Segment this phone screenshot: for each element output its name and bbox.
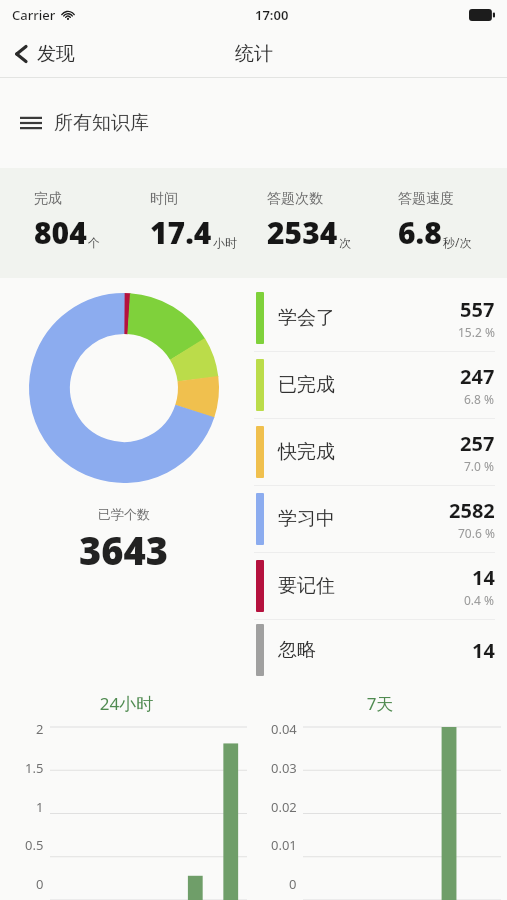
button[interactable]: 忽略 (248, 620, 495, 680)
staticText: 247 (460, 363, 495, 390)
staticText: 次 (339, 235, 351, 250)
staticText: 已完成 (278, 373, 335, 397)
staticText: 0 (289, 875, 297, 893)
staticText: 1 (36, 798, 44, 816)
button[interactable]: 学会了 (248, 285, 495, 351)
staticText: 学习中 (278, 507, 335, 531)
staticText: 17.4 (150, 212, 212, 253)
staticText: 秒/次 (443, 234, 472, 250)
staticText: 要记住 (278, 574, 335, 598)
staticText: 0.5 (25, 836, 44, 854)
staticText: 0.01 (271, 836, 297, 854)
button[interactable]: 已完成 (248, 352, 495, 418)
staticText: 804 (34, 212, 87, 253)
staticText: 70.6 % (458, 525, 495, 541)
staticText: 统计 (235, 42, 273, 66)
button[interactable]: 要记住 (248, 553, 495, 619)
staticText: 时间 (150, 190, 178, 208)
staticText: 6.8 (398, 212, 442, 253)
staticText: 答题速度 (398, 190, 454, 208)
staticText: 2 (36, 720, 44, 738)
staticText: 忽略 (278, 638, 316, 662)
staticText: 小时 (213, 235, 237, 250)
staticText: 17:00 (255, 6, 289, 24)
staticText: 15.2 % (458, 324, 495, 340)
button[interactable]: 快完成 (248, 419, 495, 485)
staticText: 14 (472, 564, 495, 591)
staticText: 2582 (449, 497, 495, 524)
button[interactable]: Menu (0, 101, 169, 145)
staticText: 0 (36, 875, 44, 893)
button[interactable]: 发现 (0, 36, 87, 72)
staticText: 7天 (253, 692, 507, 715)
staticText: 完成 (34, 190, 62, 208)
staticText: 257 (460, 430, 495, 457)
staticText: 所有知识库 (54, 111, 149, 135)
staticText: 24小时 (0, 692, 253, 715)
staticText: 学会了 (278, 306, 335, 330)
staticText: Carrier (12, 6, 56, 24)
staticText: 557 (460, 296, 495, 323)
staticText: 0.4 % (464, 592, 495, 608)
staticText: 答题次数 (267, 190, 323, 208)
staticText: 14 (472, 637, 495, 664)
button[interactable]: 学习中 (248, 486, 495, 552)
staticText: 0.02 (271, 798, 297, 816)
staticText: 已学个数 (98, 506, 150, 522)
staticText: 3643 (79, 524, 169, 576)
staticText: 发现 (37, 42, 75, 66)
staticText: 0.04 (271, 720, 297, 738)
staticText: 7.0 % (464, 458, 495, 474)
staticText: 快完成 (278, 440, 335, 464)
other: Menu (20, 115, 42, 131)
staticText: 个 (88, 235, 100, 250)
staticText: 0.03 (271, 759, 297, 777)
staticText: 6.8 % (464, 391, 495, 407)
staticText: 1.5 (25, 759, 44, 777)
staticText: 2534 (267, 212, 338, 253)
